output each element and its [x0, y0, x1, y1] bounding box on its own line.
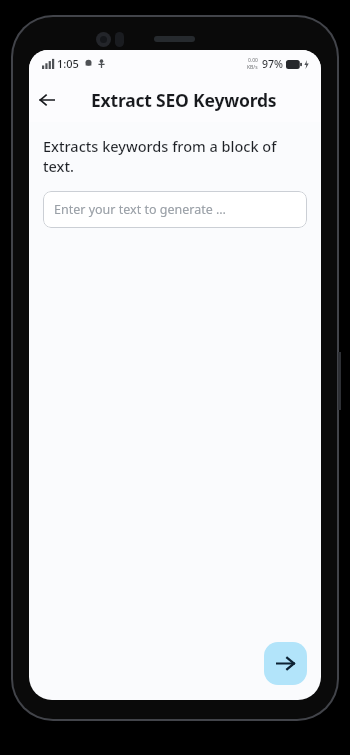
staticText: 1:05	[57, 56, 79, 71]
staticText: KB/s	[247, 64, 258, 71]
staticText: 0.00	[248, 57, 258, 64]
button[interactable]: Generate	[264, 642, 307, 685]
staticText: 97%	[262, 57, 283, 71]
staticText: Extract SEO Keywords	[91, 88, 277, 112]
button[interactable]: Back	[29, 82, 65, 118]
staticText: Enter your text to generate …	[54, 201, 226, 218]
staticText: Extracts keywords from a block of text.	[43, 136, 307, 177]
button[interactable]: Enter your text to generate …	[43, 191, 307, 228]
